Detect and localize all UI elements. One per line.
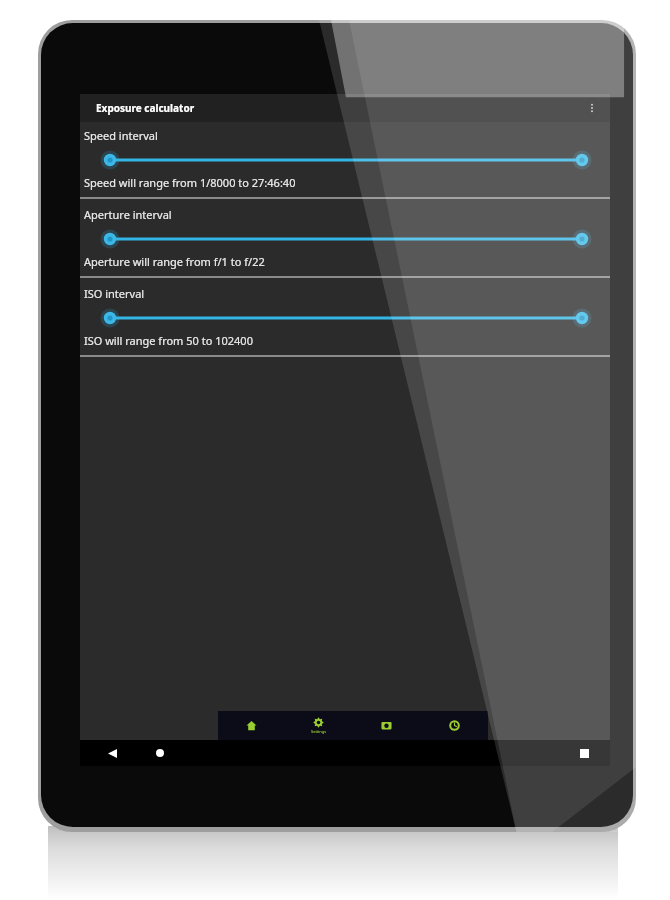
button[interactable]: ISO interval: [80, 280, 610, 359]
button[interactable]: Recent apps: [574, 743, 594, 763]
staticText: Settings: [311, 729, 327, 734]
button[interactable]: Settings: [285, 711, 352, 740]
button[interactable]: Aperture interval: [80, 201, 610, 280]
staticText: Speed interval: [84, 128, 158, 143]
staticText: ISO interval: [84, 286, 145, 301]
staticText: Speed will range from 1/8000 to 27:46:40: [84, 175, 296, 190]
staticText: Aperture will range from f/1 to f/22: [84, 254, 265, 269]
button[interactable]: Info: [420, 711, 488, 740]
staticText: Aperture interval: [84, 207, 172, 222]
staticText: ISO will range from 50 to 102400: [84, 333, 253, 348]
staticText: Exposure calculator: [96, 101, 195, 115]
button[interactable]: Home: [218, 711, 285, 740]
button[interactable]: Camera: [352, 711, 420, 740]
button[interactable]: Speed interval: [80, 122, 610, 201]
button[interactable]: More options: [582, 98, 602, 118]
button[interactable]: Home: [150, 743, 170, 763]
button[interactable]: Back: [102, 743, 122, 763]
